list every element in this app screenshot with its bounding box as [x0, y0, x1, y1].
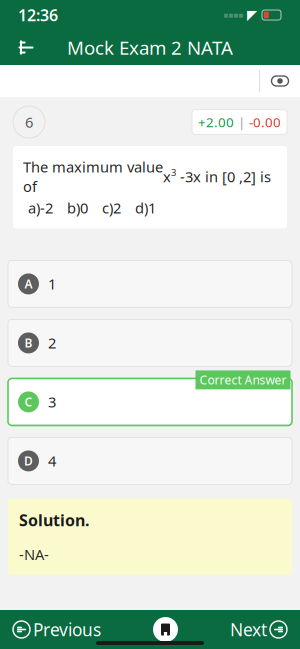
staticText: b)0 [67, 198, 88, 217]
staticText: c)2 [102, 198, 121, 217]
staticText: 12:36 [18, 4, 58, 26]
staticText: 4 [48, 451, 56, 471]
button[interactable]: B [8, 319, 292, 366]
staticText: a)-2 [28, 198, 53, 217]
staticText: 3 [48, 392, 56, 412]
staticText: 1 [48, 274, 56, 294]
staticText: -3x in [0 ,2] is [176, 167, 271, 186]
staticText: ◤ [247, 7, 257, 22]
button[interactable]: Previous [0, 610, 113, 649]
staticText: x [163, 167, 171, 186]
staticText: Correct Answer [199, 372, 286, 388]
staticText: | [238, 113, 245, 131]
staticText: ▪▪▪▪ [223, 10, 243, 20]
staticText: B [24, 335, 32, 351]
staticText: The maximum value of [23, 157, 163, 196]
staticText: Previous [33, 618, 101, 641]
staticText: D [24, 453, 33, 469]
button[interactable]: Back [6, 29, 46, 65]
button[interactable]: C [8, 378, 292, 425]
staticText: 2 [48, 333, 56, 353]
button[interactable]: Bookmark [143, 610, 187, 649]
staticText: -0.00 [249, 113, 281, 131]
button[interactable]: A [8, 260, 292, 307]
staticText: Solution. [19, 509, 89, 531]
staticText: A [24, 276, 32, 292]
button[interactable]: Next [218, 610, 300, 649]
staticText: d)1 [135, 198, 156, 217]
staticText: 3 [171, 166, 176, 179]
staticText: 6 [25, 112, 33, 132]
staticText: +2.00 [198, 113, 234, 131]
staticText: C [24, 394, 32, 410]
button[interactable]: D [8, 437, 292, 484]
staticText: Mock Exam 2 NATA [67, 35, 233, 60]
staticText: Next [230, 618, 267, 641]
button[interactable]: Show answer [260, 65, 300, 97]
staticText: -NA- [19, 545, 49, 564]
